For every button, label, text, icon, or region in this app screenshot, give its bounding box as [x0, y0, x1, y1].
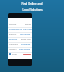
- staticText: Movers: [9, 48, 17, 51]
- staticText: Plumbing Co: [9, 28, 23, 31]
- staticText: Electric: [9, 33, 17, 36]
- staticText: Local Solutions: [22, 8, 43, 12]
- button[interactable]: Roof Fix: [8, 37, 32, 42]
- staticText: Rated: [25, 23, 31, 26]
- staticText: Cleaners: [9, 43, 18, 46]
- staticText: Service: [9, 23, 17, 26]
- button[interactable]: Electric: [8, 32, 32, 37]
- button[interactable]: Movers: [8, 47, 32, 52]
- button[interactable]: Chat: [8, 52, 32, 56]
- staticText: Book visit: [21, 38, 31, 41]
- staticText: Get quote: [20, 33, 31, 36]
- staticText: Schedule: [21, 43, 31, 46]
- staticText: Chat: [12, 53, 17, 56]
- staticText: Roof Fix: [9, 38, 18, 41]
- button[interactable]: Service: [8, 22, 32, 27]
- staticText: Free quote: [19, 48, 31, 51]
- staticText: Call now: [23, 28, 32, 31]
- button[interactable]: Plumbing Co: [8, 27, 32, 32]
- button[interactable]: Cleaners: [8, 42, 32, 47]
- staticText: Find Online and: [21, 2, 43, 6]
